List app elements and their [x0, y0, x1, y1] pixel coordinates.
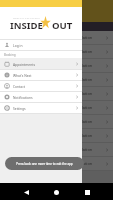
button[interactable]: Log in	[0, 40, 82, 50]
button[interactable]: Notifications	[0, 92, 82, 102]
button[interactable]: Home	[50, 186, 62, 198]
button[interactable]: Appointments	[0, 58, 82, 69]
button[interactable]: stallation	[0, 143, 113, 156]
button[interactable]: stallation	[0, 31, 113, 44]
button[interactable]: What's Next	[0, 70, 82, 80]
staticText: stallation	[75, 91, 93, 96]
button[interactable]: stallation	[0, 101, 113, 114]
staticText: Booking	[4, 53, 16, 57]
staticText: stallation	[75, 35, 93, 40]
staticText: stallation	[75, 161, 93, 166]
button[interactable]: Back	[20, 186, 32, 198]
staticText: stallation	[75, 49, 93, 54]
button[interactable]: stallation	[0, 87, 113, 100]
staticText: Log in	[13, 43, 23, 47]
button[interactable]: Settings	[0, 103, 82, 113]
button[interactable]: stallation	[0, 45, 113, 58]
button[interactable]: Recents	[81, 186, 93, 198]
staticText: Contact	[13, 84, 25, 88]
staticText: stallation	[75, 105, 93, 110]
button[interactable]: stallation	[0, 157, 113, 170]
staticText: Press back one more time to exit the app	[16, 162, 73, 166]
staticText: Settings	[13, 106, 26, 110]
staticText: stallation	[75, 119, 93, 124]
staticText: What's Next	[13, 73, 32, 77]
staticText: stallation	[75, 133, 93, 138]
staticText: stallation	[75, 63, 93, 68]
staticText: M E D I C A L S O L U T I O N S	[13, 17, 40, 20]
button[interactable]: stallation	[0, 115, 113, 128]
staticText: stallation	[75, 147, 93, 152]
button[interactable]: stallation	[0, 73, 113, 86]
button[interactable]: stallation	[0, 129, 113, 142]
button[interactable]: Contact	[0, 81, 82, 91]
staticText: stallation	[75, 77, 93, 82]
staticText: Notifications	[13, 95, 33, 99]
staticText: Appointments	[13, 62, 35, 66]
staticText: INSIDE	[10, 19, 43, 32]
staticText: OUT	[52, 19, 73, 32]
button[interactable]: stallation	[0, 59, 113, 72]
